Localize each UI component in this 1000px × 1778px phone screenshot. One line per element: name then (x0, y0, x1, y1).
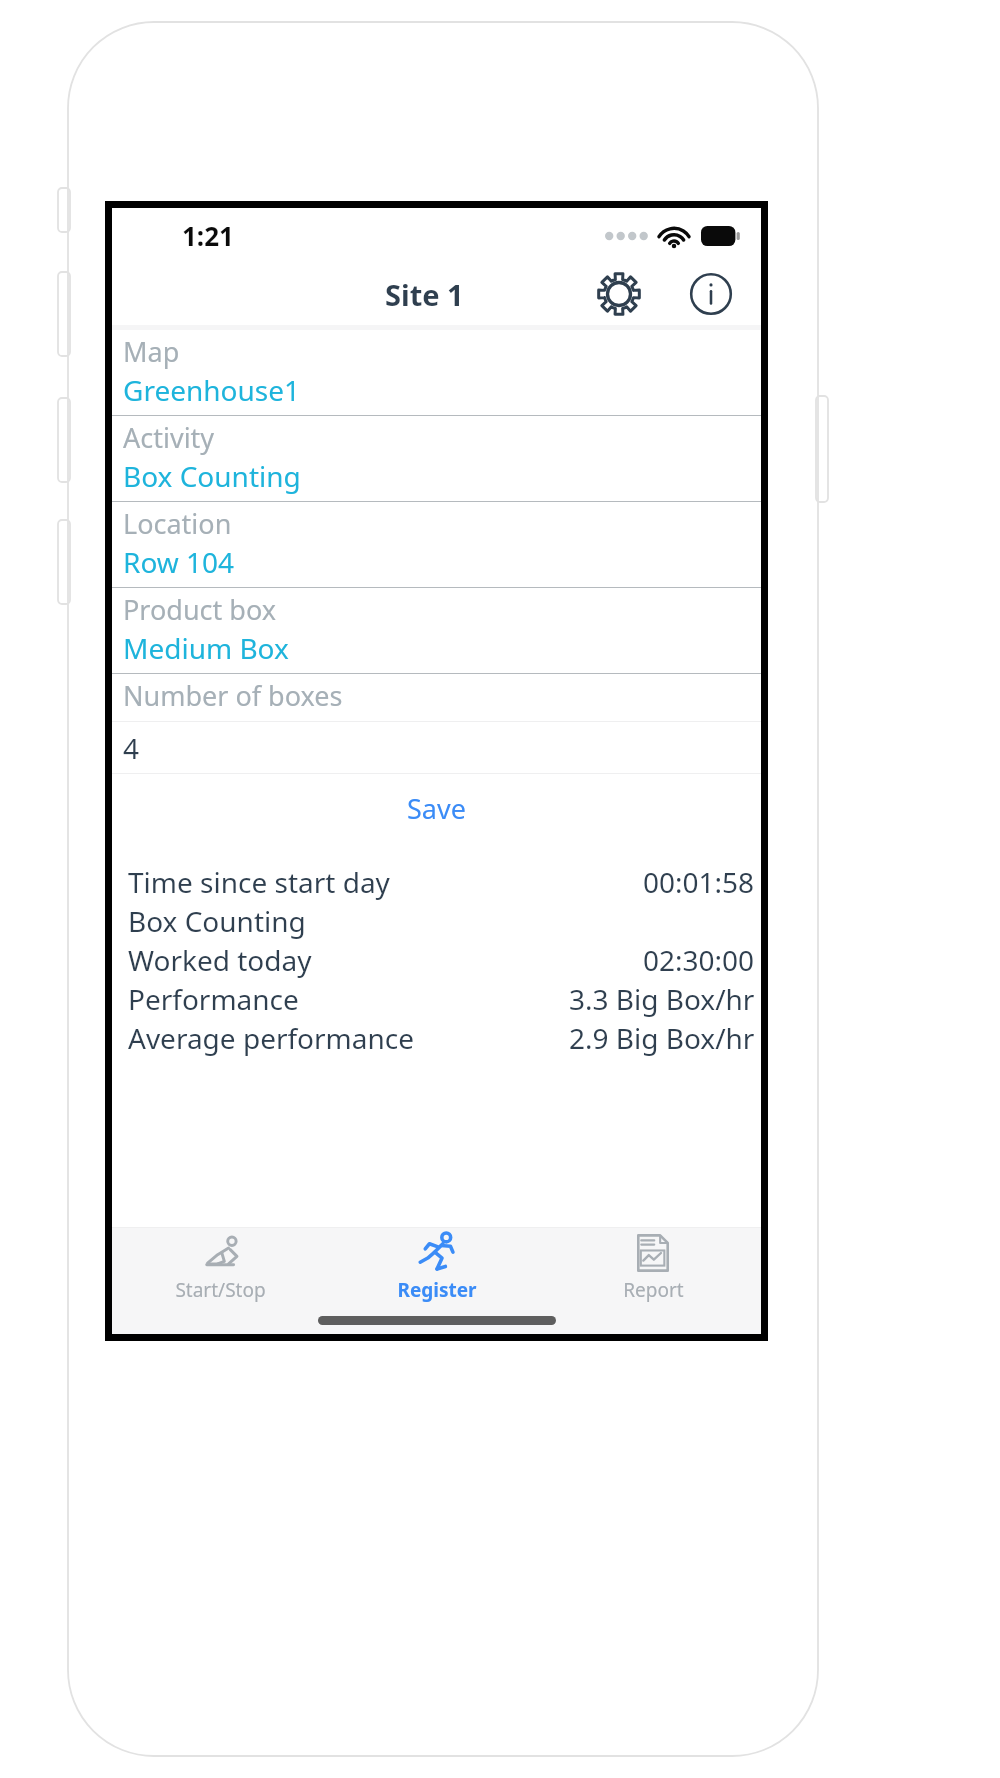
staticText: Report (623, 1277, 684, 1303)
button[interactable]: Settings (591, 266, 647, 322)
staticText: 02:30:00 (643, 941, 755, 979)
staticText: Location (123, 505, 232, 542)
button[interactable]: Product box (112, 588, 761, 674)
staticText: Save (407, 790, 466, 827)
staticText: 3.3 Big Box/hr (569, 980, 755, 1018)
staticText: Greenhouse1 (123, 371, 301, 409)
staticText: 4 (123, 729, 140, 767)
button[interactable]: Save (381, 780, 492, 837)
staticText: Register (397, 1277, 477, 1303)
staticText: Medium Box (123, 629, 289, 667)
staticText: Box Counting (128, 902, 306, 940)
staticText: Start/Stop (175, 1277, 266, 1303)
staticText: Performance (128, 980, 299, 1018)
staticText: Activity (123, 419, 215, 456)
staticText: Site 1 (385, 275, 464, 314)
button[interactable]: Map (112, 330, 761, 416)
staticText: Worked today (128, 941, 312, 979)
button[interactable]: Number of boxes (112, 674, 761, 774)
button[interactable]: Activity (112, 416, 761, 502)
staticText: Row 104 (123, 543, 235, 581)
button[interactable]: Report (545, 1228, 761, 1306)
staticText: 00:01:58 (643, 863, 755, 901)
button[interactable]: Info (683, 266, 739, 322)
staticText: Product box (123, 591, 276, 628)
button[interactable]: Start/Stop (112, 1228, 329, 1306)
staticText: Time since start day (128, 863, 390, 901)
staticText: 1:21 (182, 218, 234, 253)
staticText: Number of boxes (123, 677, 343, 714)
staticText: Box Counting (123, 457, 301, 495)
staticText: Map (123, 333, 180, 370)
button[interactable]: Register (329, 1228, 545, 1306)
staticText: Average performance (128, 1019, 415, 1057)
staticText: 2.9 Big Box/hr (569, 1019, 755, 1057)
button[interactable]: Location (112, 502, 761, 588)
